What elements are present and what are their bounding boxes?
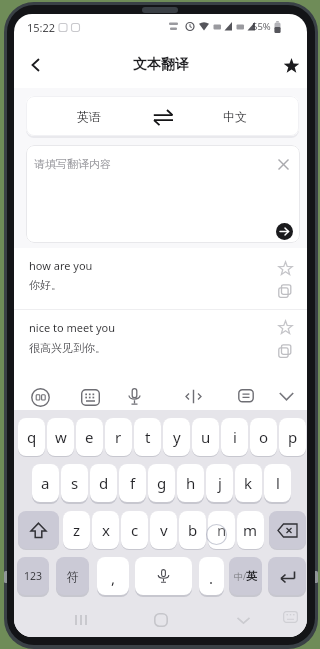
button[interactable]: 123 <box>17 557 49 595</box>
button[interactable] <box>150 107 177 127</box>
button[interactable]: 符 <box>56 557 89 595</box>
button[interactable] <box>66 606 95 634</box>
button[interactable]: f <box>119 464 146 502</box>
staticText: 英 <box>246 569 257 583</box>
button[interactable] <box>274 383 299 409</box>
button[interactable]: e <box>76 418 103 456</box>
staticText: q <box>27 427 37 447</box>
staticText: a <box>41 473 50 493</box>
button[interactable] <box>269 511 306 549</box>
staticText: s <box>71 473 79 493</box>
button[interactable]: r <box>105 418 132 456</box>
button[interactable] <box>277 51 306 79</box>
staticText: 请填写翻译内容 <box>34 157 111 171</box>
button[interactable] <box>233 383 258 410</box>
staticText: g <box>157 473 167 493</box>
button[interactable]: b <box>179 511 206 549</box>
staticText: j <box>218 473 222 493</box>
staticText: w <box>55 427 67 447</box>
staticText: 中 <box>234 571 243 582</box>
button[interactable]: n <box>208 511 235 549</box>
staticText: how are you <box>29 258 93 273</box>
staticText: x <box>102 520 110 540</box>
button[interactable] <box>146 606 175 634</box>
staticText: y <box>173 427 181 447</box>
staticText: 英语 <box>77 109 101 124</box>
button[interactable] <box>272 153 294 175</box>
button[interactable]: 英语 <box>49 102 129 130</box>
button[interactable]: p <box>279 418 306 456</box>
staticText: 123 <box>24 569 43 583</box>
staticText: d <box>99 473 109 493</box>
staticText: u <box>201 427 211 447</box>
button[interactable] <box>268 557 306 595</box>
staticText: m <box>243 520 258 540</box>
button[interactable]: s <box>61 464 88 502</box>
staticText: e <box>85 427 94 447</box>
button[interactable]: 中文 <box>195 102 275 130</box>
staticText: i <box>233 427 237 447</box>
staticText: 15:22 <box>27 20 56 35</box>
button[interactable] <box>22 51 50 79</box>
button[interactable]: g <box>148 464 175 502</box>
button[interactable] <box>278 344 292 358</box>
button[interactable]: y <box>163 418 190 456</box>
staticText: r <box>115 427 122 447</box>
button[interactable]: x <box>92 511 119 549</box>
button[interactable] <box>278 320 293 335</box>
button[interactable]: z <box>63 511 90 549</box>
staticText: / <box>243 571 246 582</box>
staticText: 符 <box>67 569 79 584</box>
staticText: 55% <box>252 20 271 33</box>
staticText: v <box>160 520 168 540</box>
button[interactable] <box>18 511 59 549</box>
staticText: z <box>73 520 81 540</box>
button[interactable]: l <box>264 464 291 502</box>
staticText: c <box>131 520 139 540</box>
staticText: k <box>244 473 253 493</box>
button[interactable]: u <box>192 418 219 456</box>
button[interactable]: j <box>206 464 233 502</box>
button[interactable]: q <box>18 418 45 456</box>
button[interactable]: a <box>32 464 59 502</box>
staticText: b <box>188 520 198 540</box>
staticText: 文本翻译 <box>133 56 189 74</box>
staticText: nice to meet you <box>29 320 116 335</box>
staticText: n <box>217 520 227 540</box>
button[interactable]: , <box>97 557 129 595</box>
staticText: . <box>209 568 214 588</box>
button[interactable]: v <box>150 511 177 549</box>
button[interactable] <box>27 384 54 410</box>
button[interactable] <box>135 557 192 595</box>
staticText: t <box>145 427 151 447</box>
button[interactable]: c <box>121 511 148 549</box>
staticText: p <box>288 427 298 447</box>
button[interactable]: . <box>199 557 224 595</box>
button[interactable]: m <box>237 511 264 549</box>
staticText: f <box>130 473 136 493</box>
button[interactable] <box>278 604 302 630</box>
staticText: l <box>276 473 280 493</box>
button[interactable]: h <box>177 464 204 502</box>
button[interactable]: i <box>221 418 248 456</box>
button[interactable]: o <box>250 418 277 456</box>
button[interactable] <box>77 384 104 410</box>
button[interactable]: 中 <box>229 557 262 595</box>
button[interactable] <box>181 383 206 410</box>
button[interactable]: d <box>90 464 117 502</box>
button[interactable]: w <box>47 418 74 456</box>
staticText: 很高兴见到你。 <box>29 341 106 355</box>
button[interactable]: t <box>134 418 161 456</box>
staticText: 中文 <box>223 109 247 124</box>
staticText: o <box>259 427 269 447</box>
button[interactable] <box>278 261 293 276</box>
button[interactable] <box>229 606 258 634</box>
button[interactable] <box>122 383 147 410</box>
button[interactable] <box>276 223 293 240</box>
button[interactable]: k <box>235 464 262 502</box>
button[interactable] <box>278 284 292 298</box>
staticText: , <box>111 568 116 588</box>
staticText: h <box>186 473 196 493</box>
staticText: 你好。 <box>29 278 62 292</box>
